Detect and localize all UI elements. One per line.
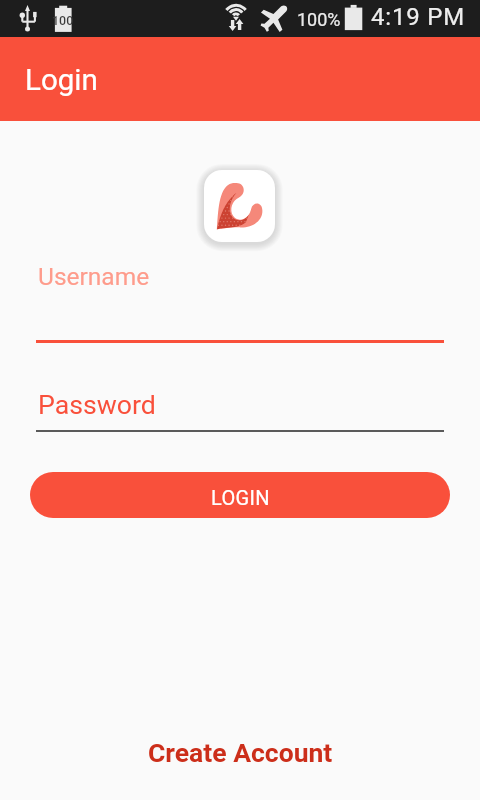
other: App logo (204, 170, 275, 242)
staticText: Create Account (148, 737, 333, 768)
staticText: Password (38, 389, 156, 420)
staticText: Username (38, 262, 150, 291)
staticText: 100 (52, 13, 74, 28)
button[interactable]: LOGIN (30, 472, 450, 518)
staticText: 4:19 PM (371, 3, 465, 31)
staticText: 100% (297, 9, 341, 30)
staticText: LOGIN (211, 486, 270, 509)
button[interactable]: Create Account (0, 720, 480, 784)
staticText: Login (25, 63, 98, 98)
